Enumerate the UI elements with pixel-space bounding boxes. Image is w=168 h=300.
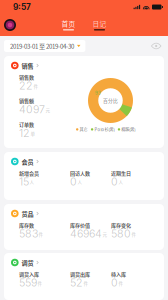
- staticText: 会员: [22, 158, 34, 165]
- staticText: 其它: [79, 127, 87, 132]
- staticText: 人: [77, 180, 82, 185]
- staticText: 15: [19, 177, 29, 186]
- staticText: 销售数: [19, 74, 34, 80]
- staticText: 2019-03-01 至 2019-04-30: [10, 42, 74, 50]
- staticText: 559: [19, 278, 37, 287]
- staticText: 件: [131, 232, 136, 237]
- staticText: 件: [37, 281, 42, 286]
- staticText: 0: [111, 177, 118, 186]
- staticText: 9:57: [13, 3, 31, 11]
- staticText: 件: [118, 281, 123, 286]
- staticText: 库存价值: [70, 222, 90, 228]
- staticText: 件: [33, 84, 38, 89]
- button[interactable]: 首页: [56, 18, 80, 31]
- staticText: 22: [19, 81, 33, 90]
- button[interactable]: 日记: [87, 18, 111, 31]
- staticText: 调货入库: [19, 271, 39, 277]
- staticText: 新增会员: [19, 170, 39, 176]
- staticText: 单: [30, 131, 35, 136]
- staticText: 93: [95, 91, 101, 95]
- staticText: 库存数: [19, 222, 34, 228]
- staticText: 12: [19, 128, 30, 137]
- button[interactable]: 会员: [11, 157, 164, 166]
- staticText: 人: [29, 180, 34, 185]
- staticText: 件: [38, 232, 43, 237]
- button[interactable]: Profile: [3, 18, 17, 32]
- staticText: Polo衫(男): [94, 127, 114, 132]
- button[interactable]: 2019-03-01 至 2019-04-30: [4, 40, 85, 52]
- staticText: 人: [118, 180, 123, 185]
- staticText: 0: [111, 278, 118, 287]
- staticText: 销售: [22, 62, 34, 69]
- staticText: 调货出库: [70, 271, 90, 277]
- staticText: 元: [45, 107, 50, 113]
- staticText: 回访人数: [70, 170, 90, 176]
- staticText: 首页: [61, 20, 75, 28]
- staticText: 583: [19, 229, 38, 238]
- staticText: 0: [70, 177, 77, 186]
- staticText: 调货: [22, 259, 34, 266]
- button[interactable]: Toggle amounts: [148, 39, 164, 53]
- staticText: 棉服(男): [121, 127, 135, 132]
- button[interactable]: 销售: [11, 61, 164, 70]
- staticText: 库存变化: [111, 222, 131, 228]
- staticText: 货品: [22, 210, 34, 217]
- staticText: 待入库: [111, 271, 126, 277]
- button[interactable]: 调货: [11, 258, 164, 267]
- staticText: 46964: [70, 229, 102, 238]
- button[interactable]: 货品: [11, 209, 164, 218]
- staticText: 元: [102, 232, 107, 237]
- staticText: 52: [70, 278, 83, 287]
- staticText: 近期生日: [111, 170, 131, 176]
- staticText: 百分比: [103, 98, 118, 103]
- staticText: 4097: [19, 105, 45, 114]
- staticText: 580: [111, 229, 131, 238]
- staticText: 订单数: [19, 121, 34, 127]
- staticText: 销售额: [19, 98, 34, 104]
- staticText: 日记: [92, 20, 106, 28]
- staticText: 件: [83, 281, 88, 286]
